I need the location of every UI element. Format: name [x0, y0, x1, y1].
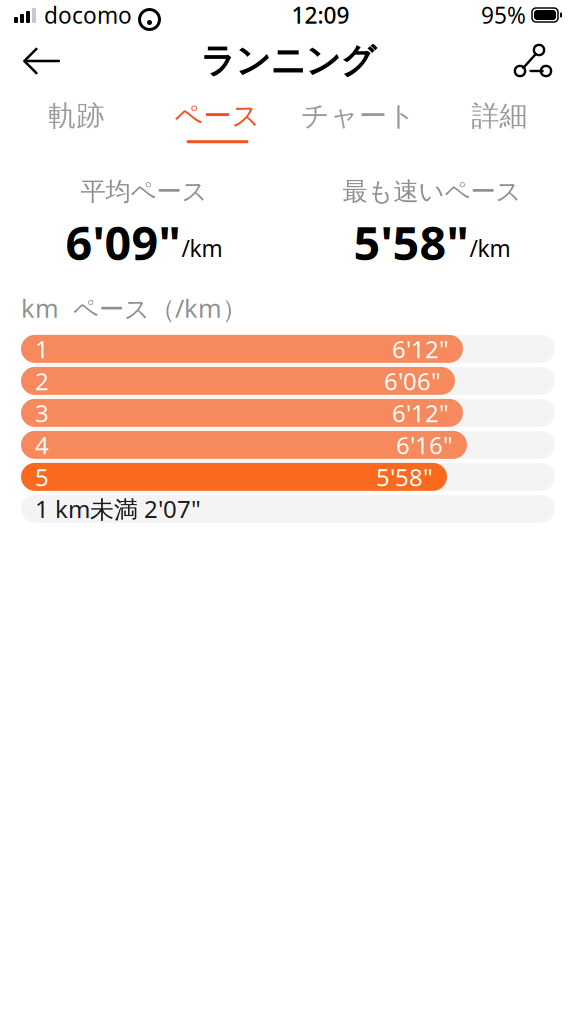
- staticText: ランニング: [200, 40, 375, 82]
- staticText: docomo: [44, 0, 132, 30]
- button[interactable]: 詳細: [429, 92, 570, 150]
- button[interactable]: 軌跡: [6, 92, 147, 150]
- staticText: 5: [35, 461, 49, 493]
- staticText: 平均ペース: [80, 176, 207, 207]
- staticText: 12:09: [291, 0, 349, 30]
- staticText: 6'12": [392, 333, 449, 365]
- staticText: 5'58": [353, 211, 468, 273]
- button[interactable]: 戻る: [12, 30, 74, 92]
- staticText: km ペース（/km）: [21, 291, 247, 325]
- button[interactable]: チャート: [288, 92, 429, 150]
- staticText: チャート: [301, 99, 416, 133]
- staticText: /km: [181, 233, 222, 263]
- staticText: 95%: [481, 0, 526, 30]
- staticText: 最も速いペース: [342, 176, 521, 207]
- staticText: 軌跡: [48, 99, 104, 133]
- staticText: 6'12": [392, 397, 449, 429]
- staticText: 5'58": [376, 461, 433, 493]
- staticText: 4: [35, 429, 49, 461]
- staticText: 詳細: [471, 99, 527, 133]
- staticText: 2: [35, 365, 49, 397]
- staticText: /km: [469, 233, 510, 263]
- staticText: 6'06": [384, 365, 441, 397]
- staticText: 6'16": [396, 429, 453, 461]
- button[interactable]: ペース: [147, 92, 288, 150]
- staticText: 1: [35, 333, 49, 365]
- staticText: 3: [35, 397, 49, 429]
- button[interactable]: 共有: [502, 30, 564, 92]
- staticText: 1 km未満 2'07": [35, 493, 201, 525]
- staticText: ペース: [174, 99, 260, 133]
- staticText: 6'09": [65, 211, 180, 273]
